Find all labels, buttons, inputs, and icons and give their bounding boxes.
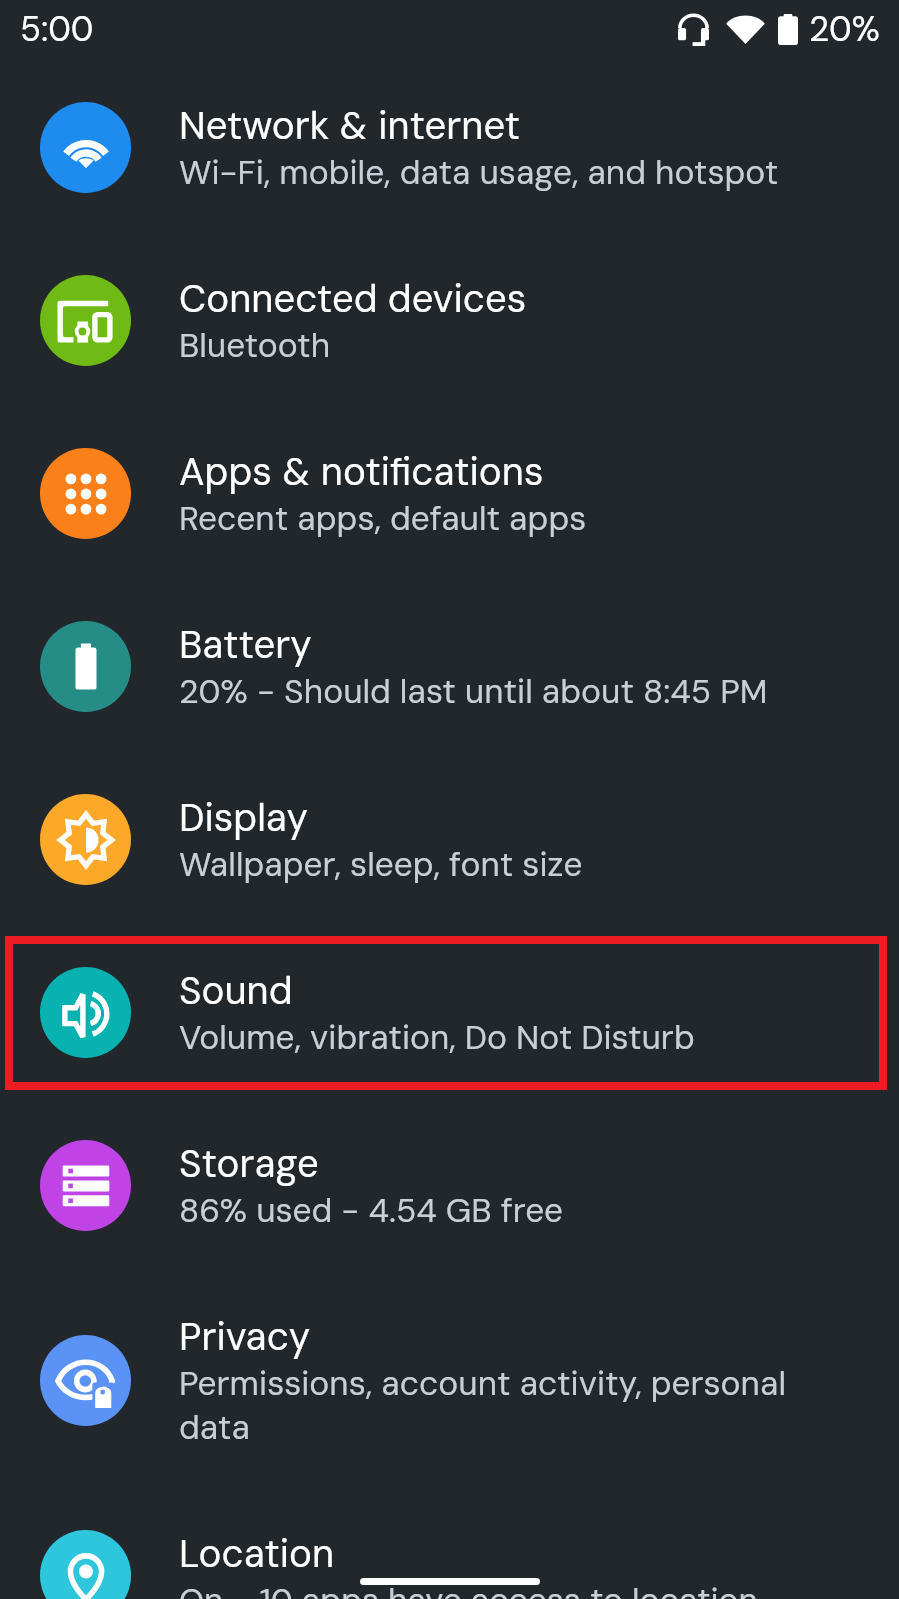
staticText: Location xyxy=(179,1529,335,1579)
staticText: Recent apps, default apps xyxy=(179,497,587,541)
staticText: 5:00 xyxy=(20,7,94,52)
other: Battery xyxy=(778,14,798,45)
button[interactable]: Privacy xyxy=(0,1272,899,1489)
button[interactable]: Display xyxy=(0,753,899,926)
staticText: Battery xyxy=(179,620,312,670)
staticText: Wallpaper, sleep, font size xyxy=(179,843,583,887)
staticText: Privacy xyxy=(179,1312,311,1362)
staticText: Network & internet xyxy=(179,101,521,151)
staticText: On - 10 apps have access to location xyxy=(179,1579,758,1599)
button[interactable]: Sound xyxy=(0,926,899,1099)
button[interactable]: Apps & notifications xyxy=(0,407,899,580)
staticText: Apps & notifications xyxy=(179,447,544,497)
staticText: Storage xyxy=(179,1139,319,1189)
staticText: Display xyxy=(179,793,308,843)
staticText: Connected devices xyxy=(179,274,527,324)
button[interactable]: Connected devices xyxy=(0,234,899,407)
button[interactable]: Storage xyxy=(0,1099,899,1272)
staticText: 20% - Should last until about 8:45 PM xyxy=(179,670,768,714)
other: Wi-Fi xyxy=(726,15,765,44)
button[interactable]: Battery xyxy=(0,580,899,753)
staticText: Sound xyxy=(179,966,293,1016)
button[interactable]: Network & internet xyxy=(0,61,899,234)
staticText: Bluetooth xyxy=(179,324,331,368)
staticText: 86% used - 4.54 GB free xyxy=(179,1189,564,1233)
staticText: Permissions, account activity, personal … xyxy=(179,1362,859,1450)
staticText: 20% xyxy=(809,7,881,52)
button[interactable]: Location xyxy=(0,1489,899,1599)
other: Headset connected xyxy=(678,14,709,46)
staticText: Wi-Fi, mobile, data usage, and hotspot xyxy=(179,151,779,195)
staticText: Volume, vibration, Do Not Disturb xyxy=(179,1016,695,1060)
